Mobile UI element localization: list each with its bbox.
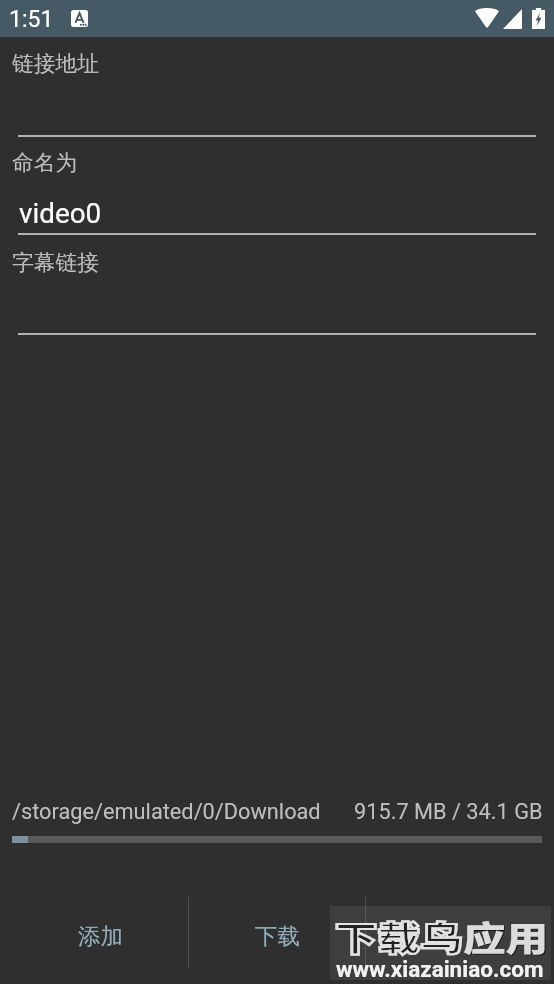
staticText: 下载 — [255, 922, 300, 950]
staticText: www.xiazainiao.com — [336, 956, 544, 982]
staticText: 链接地址 — [12, 50, 99, 77]
button[interactable]: 下载 — [189, 892, 365, 980]
staticText: 下载鸟应用 — [335, 911, 549, 960]
staticText: video0 — [19, 197, 102, 230]
staticText: 添加 — [78, 922, 123, 950]
staticText: 1:51 — [9, 6, 54, 33]
staticText: 下载鸟应用 — [336, 912, 551, 961]
other: Input method — [71, 10, 88, 27]
staticText: 字幕链接 — [12, 249, 99, 276]
button[interactable]: More options — [366, 892, 554, 980]
button[interactable]: 添加 — [0, 892, 188, 980]
staticText: 915.7 MB / 34.1 GB — [354, 799, 543, 824]
staticText: 命名为 — [12, 149, 78, 176]
staticText: /storage/emulated/0/Download — [12, 799, 321, 824]
